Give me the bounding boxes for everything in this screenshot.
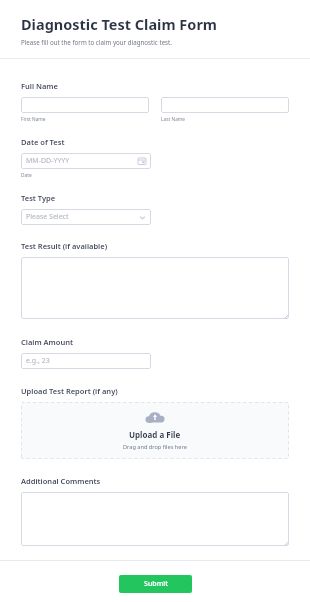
button[interactable] bbox=[21, 492, 289, 546]
staticText: Diagnostic Test Claim Form bbox=[21, 14, 217, 34]
staticText: Full Name bbox=[21, 81, 58, 91]
staticText: Submit bbox=[144, 579, 168, 589]
staticText: First Name bbox=[21, 116, 46, 123]
button[interactable] bbox=[21, 97, 149, 113]
button[interactable]: Submit bbox=[119, 575, 192, 593]
button[interactable]: e.g., 23 bbox=[21, 353, 151, 369]
staticText: Please fill out the form to claim your d… bbox=[21, 38, 172, 46]
button[interactable] bbox=[161, 97, 289, 113]
button[interactable]: Upload a file bbox=[21, 402, 289, 459]
button[interactable]: Please Select bbox=[21, 209, 151, 225]
staticText: e.g., 23 bbox=[26, 356, 50, 366]
staticText: Upload Test Report (if any) bbox=[21, 386, 118, 396]
staticText: Additional Comments bbox=[21, 476, 101, 486]
staticText: Test Type bbox=[21, 193, 56, 203]
other: Open list bbox=[139, 214, 146, 221]
staticText: Date of Test bbox=[21, 137, 65, 147]
button[interactable] bbox=[21, 257, 289, 319]
staticText: Drag and drop files here bbox=[123, 443, 187, 451]
staticText: Claim Amount bbox=[21, 337, 74, 347]
staticText: Please Select bbox=[26, 212, 69, 222]
staticText: MM-DD-YYYY bbox=[26, 156, 70, 166]
other: Pick date bbox=[138, 157, 146, 165]
button[interactable]: MM-DD-YYYY bbox=[21, 153, 151, 169]
staticText: Last Name bbox=[161, 116, 186, 123]
staticText: Date bbox=[21, 172, 32, 179]
staticText: Upload a File bbox=[129, 429, 181, 440]
staticText: Test Result (if available) bbox=[21, 241, 108, 251]
